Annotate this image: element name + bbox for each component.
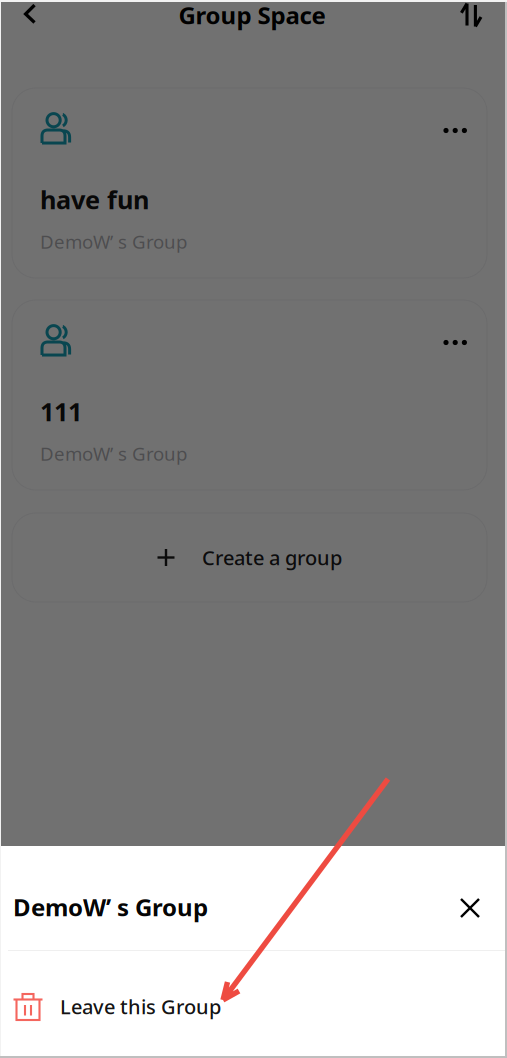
- button[interactable]: Close: [450, 880, 490, 928]
- button[interactable]: Sort: [450, 0, 507, 36]
- button[interactable]: Back: [0, 0, 46, 36]
- staticText: Create a group: [202, 544, 342, 571]
- staticText: DemoW’ s Group: [13, 891, 208, 923]
- staticText: 111: [40, 395, 82, 428]
- button[interactable]: have fun: [12, 88, 487, 278]
- button[interactable]: Create a group: [12, 513, 487, 602]
- button[interactable]: Leave this Group: [0, 951, 507, 1058]
- staticText: DemoW’ s Group: [40, 229, 187, 254]
- staticText: have fun: [40, 183, 149, 216]
- staticText: DemoW’ s Group: [40, 441, 187, 466]
- staticText: Group Space: [178, 0, 325, 31]
- button[interactable]: 111: [12, 300, 487, 490]
- staticText: Leave this Group: [60, 993, 221, 1020]
